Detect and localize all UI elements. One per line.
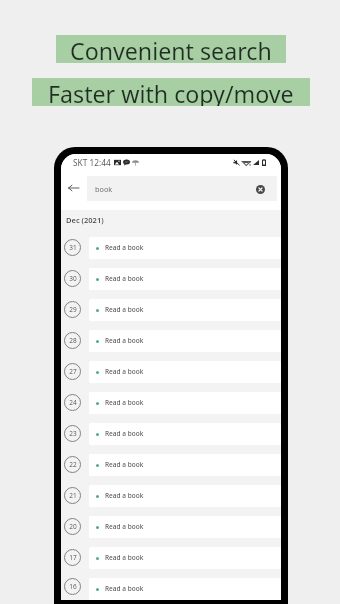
staticText: 28	[69, 336, 77, 345]
staticText: 27	[69, 367, 77, 376]
staticText: Read a book	[105, 429, 144, 438]
button[interactable]: 23	[61, 418, 281, 449]
button[interactable]: 20	[61, 511, 281, 542]
staticText: Read a book	[105, 398, 144, 407]
staticText: Read a book	[105, 243, 144, 252]
staticText: book	[95, 184, 113, 194]
button[interactable]: 24	[61, 387, 281, 418]
staticText: Read a book	[105, 460, 144, 469]
staticText: 31	[69, 243, 77, 252]
staticText: 16	[69, 582, 77, 591]
staticText: Read a book	[105, 491, 144, 500]
button[interactable]: Read a book	[89, 237, 281, 259]
staticText: 23	[69, 429, 77, 438]
button[interactable]: Read a book	[89, 485, 281, 507]
staticText: 20	[69, 522, 77, 531]
button[interactable]: Read a book	[89, 392, 281, 414]
button[interactable]: Read a book	[89, 268, 281, 290]
staticText: Convenient search	[70, 35, 272, 63]
button[interactable]: Read a book	[89, 516, 281, 538]
button[interactable]: 29	[61, 294, 281, 325]
staticText: Dec (2021)	[66, 215, 104, 225]
staticText: 22	[69, 460, 77, 469]
button[interactable]: book	[87, 176, 277, 201]
staticText: Read a book	[105, 367, 144, 376]
button[interactable]: Read a book	[89, 299, 281, 321]
button[interactable]: 27	[61, 356, 281, 387]
staticText: Read a book	[105, 584, 144, 593]
staticText: Read a book	[105, 305, 144, 314]
button[interactable]: Read a book	[89, 361, 281, 383]
button[interactable]: 22	[61, 449, 281, 480]
button[interactable]: 16	[61, 573, 281, 600]
button[interactable]: 28	[61, 325, 281, 356]
staticText: Read a book	[105, 336, 144, 345]
staticText: 30	[69, 274, 77, 283]
staticText: 17	[69, 553, 77, 562]
staticText: Faster with copy/move	[48, 78, 294, 106]
button[interactable]: Read a book	[89, 454, 281, 476]
button[interactable]: 31	[61, 232, 281, 263]
staticText: Read a book	[105, 522, 144, 531]
button[interactable]: 21	[61, 480, 281, 511]
staticText: 24	[69, 398, 77, 407]
staticText: Read a book	[105, 553, 144, 562]
staticText: 29	[69, 305, 77, 314]
button[interactable]: Read a book	[89, 547, 281, 569]
button[interactable]: Read a book	[89, 578, 281, 600]
staticText: Read a book	[105, 274, 144, 283]
button[interactable]: 17	[61, 542, 281, 573]
button[interactable]: Read a book	[89, 423, 281, 445]
button[interactable]: 30	[61, 263, 281, 294]
button[interactable]: Read a book	[89, 330, 281, 352]
staticText: 21	[69, 491, 77, 500]
staticText: SKT 12:44	[73, 157, 111, 168]
button[interactable]: Back	[64, 179, 82, 197]
button[interactable]: Clear search	[254, 183, 266, 195]
